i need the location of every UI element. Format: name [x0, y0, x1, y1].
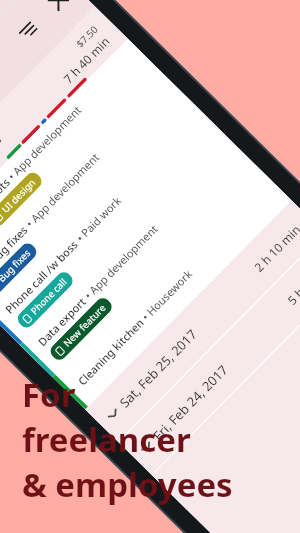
staticText: • App development: [2, 102, 85, 185]
button[interactable]: Sun, Feb 26, 2017: [0, 6, 128, 248]
staticText: Phone call: [28, 275, 69, 317]
button[interactable]: Fri, Feb 24, 2017: [119, 233, 300, 475]
staticText: 7 h 40 min: [60, 33, 113, 86]
staticText: Sun, Feb 26, 2017: [0, 128, 8, 217]
staticText: • Housework: [136, 266, 195, 326]
button[interactable]: Phone call /w boss: [0, 103, 226, 345]
staticText: • App development: [79, 221, 161, 304]
staticText: Sat, Feb 25, 2017: [115, 325, 201, 411]
staticText: 5 h 05 min: [284, 254, 300, 308]
staticText: Cleaning kitchen: [74, 315, 147, 388]
staticText: New feature: [61, 301, 109, 350]
button[interactable]: Store screenshots: [0, 39, 161, 280]
staticText: Store screenshots: [0, 175, 13, 252]
staticText: Fri, Feb 24, 2017: [149, 361, 232, 444]
button[interactable]: Cleaning kitchen: [52, 168, 292, 410]
staticText: UI design: [0, 176, 38, 216]
staticText: For: [22, 372, 76, 417]
staticText: & employees: [22, 462, 233, 507]
button[interactable]: Filter: [9, 12, 46, 49]
button[interactable]: Last bug fixes: [0, 71, 193, 313]
staticText: Bug fixes: [0, 247, 33, 285]
staticText: $7.50: [73, 22, 101, 50]
button[interactable]: Data export: [20, 136, 259, 377]
staticText: Phone call /w boss: [2, 236, 81, 317]
staticText: • Paid work: [71, 193, 124, 247]
staticText: 2 h 10 min: [250, 221, 300, 275]
button[interactable]: Sat, Feb 25, 2017: [85, 200, 300, 442]
staticText: • App development: [20, 149, 103, 232]
staticText: Last bug fixes: [0, 222, 31, 284]
staticText: freelancer: [22, 417, 191, 462]
staticText: Data export: [34, 294, 89, 349]
button[interactable]: Close: [39, 0, 76, 19]
